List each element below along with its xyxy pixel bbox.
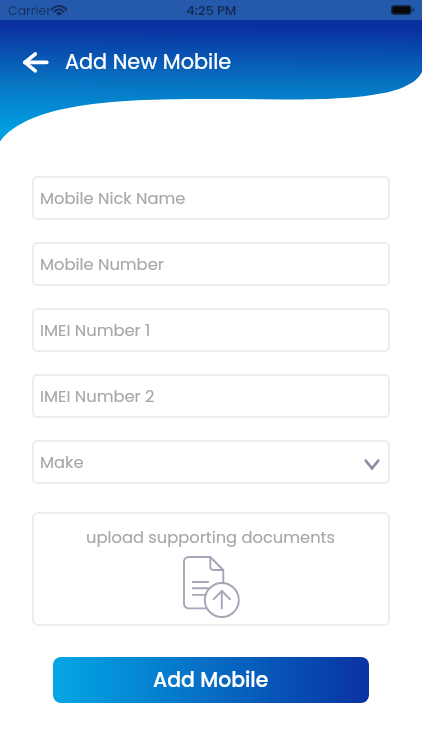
- button[interactable]: Back: [12, 38, 60, 86]
- button[interactable]: Add Mobile: [53, 657, 369, 703]
- button[interactable]: Make: [32, 440, 390, 484]
- staticText: IMEI Number 1: [40, 319, 151, 342]
- staticText: upload supporting documents: [86, 526, 336, 549]
- button[interactable]: Mobile Number: [32, 242, 390, 286]
- staticText: Make: [40, 451, 84, 474]
- button[interactable]: IMEI Number 2: [32, 374, 390, 418]
- staticText: Mobile Number: [40, 253, 164, 276]
- button[interactable]: Mobile Nick Name: [32, 176, 390, 220]
- staticText: 4:25 PM: [186, 1, 237, 19]
- staticText: Carrier: [8, 2, 51, 19]
- staticText: IMEI Number 2: [40, 385, 155, 408]
- staticText: Mobile Nick Name: [40, 187, 186, 210]
- staticText: Add New Mobile: [65, 47, 232, 76]
- staticText: Add Mobile: [153, 666, 269, 695]
- button[interactable]: upload supporting documents: [32, 512, 390, 626]
- button[interactable]: IMEI Number 1: [32, 308, 390, 352]
